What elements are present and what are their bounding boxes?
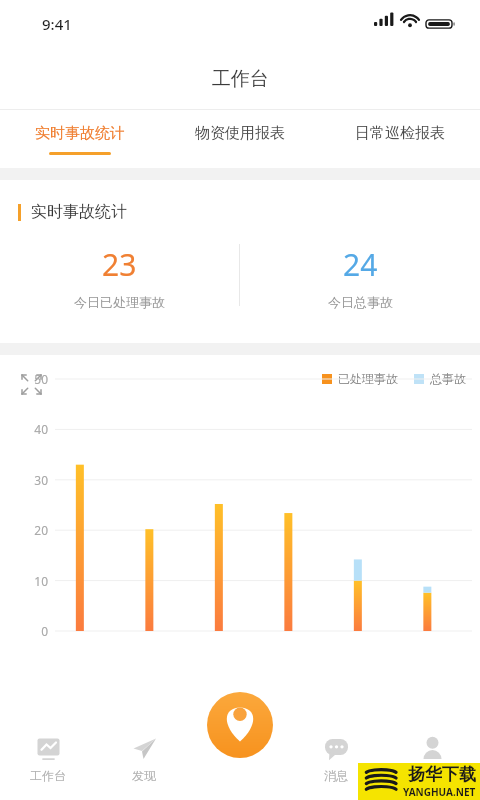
button[interactable]: 工作台 <box>0 722 96 800</box>
button[interactable]: 消息 <box>288 722 384 800</box>
staticText: 10 <box>20 573 48 589</box>
staticText: 总事故 <box>430 371 466 386</box>
button[interactable]: 24 <box>240 244 480 310</box>
staticText: 23 <box>102 244 137 285</box>
staticText: 物资使用报表 <box>195 124 285 143</box>
staticText: 今日总事故 <box>328 294 393 310</box>
button[interactable]: Location <box>207 692 273 758</box>
button[interactable]: 我的 <box>384 722 480 800</box>
staticText: YANGHUA.NET <box>403 785 476 799</box>
button[interactable]: Expand chart <box>14 367 48 401</box>
button[interactable]: 实时事故统计 <box>0 110 160 168</box>
staticText: 已处理事故 <box>338 371 398 386</box>
staticText: 工作台 <box>212 67 269 91</box>
button[interactable]: 日常巡检报表 <box>320 110 480 168</box>
staticText: 24 <box>343 244 378 285</box>
staticText: 发现 <box>132 768 156 783</box>
staticText: 日常巡检报表 <box>355 124 445 143</box>
staticText: 扬华下载 <box>408 764 476 785</box>
staticText: 消息 <box>324 768 348 783</box>
button[interactable]: 23 <box>0 244 239 310</box>
staticText: 工作台 <box>30 768 66 783</box>
staticText: 50 <box>20 371 48 387</box>
staticText: 9:41 <box>42 14 72 34</box>
staticText: 30 <box>20 472 48 488</box>
staticText: 今日已处理事故 <box>74 294 165 310</box>
staticText: 实时事故统计 <box>31 202 127 222</box>
button[interactable]: 发现 <box>96 722 192 800</box>
staticText: 20 <box>20 522 48 538</box>
staticText: 0 <box>20 623 48 639</box>
staticText: 我的 <box>420 768 444 783</box>
staticText: 实时事故统计 <box>35 124 125 143</box>
button[interactable]: 物资使用报表 <box>160 110 320 168</box>
staticText: 40 <box>20 421 48 437</box>
